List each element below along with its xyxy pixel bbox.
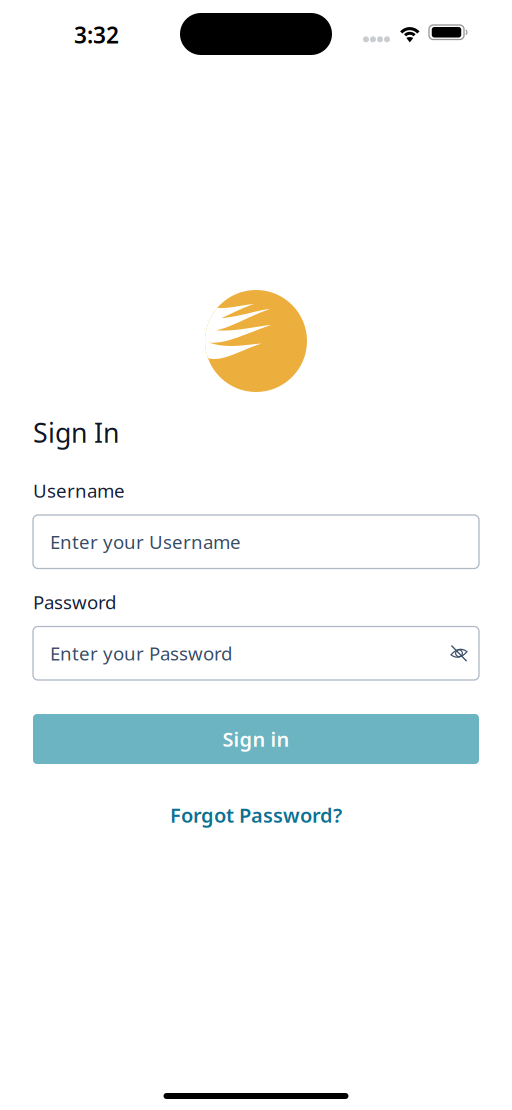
staticText: Sign In (33, 415, 119, 450)
staticText: Sign in (222, 726, 289, 752)
staticText: Enter your Username (50, 529, 241, 554)
staticText: Password (33, 590, 116, 614)
staticText: Username (33, 478, 125, 503)
button[interactable]: Enter your Password (33, 626, 479, 680)
button[interactable]: Forgot Password? (170, 802, 342, 828)
staticText: 3:32 (74, 20, 119, 50)
button[interactable]: Enter your Username (33, 515, 479, 568)
button[interactable]: Sign in (33, 714, 479, 764)
staticText: Enter your Password (50, 641, 232, 666)
button[interactable]: Show password (450, 644, 468, 662)
staticText: Forgot Password? (170, 802, 342, 828)
